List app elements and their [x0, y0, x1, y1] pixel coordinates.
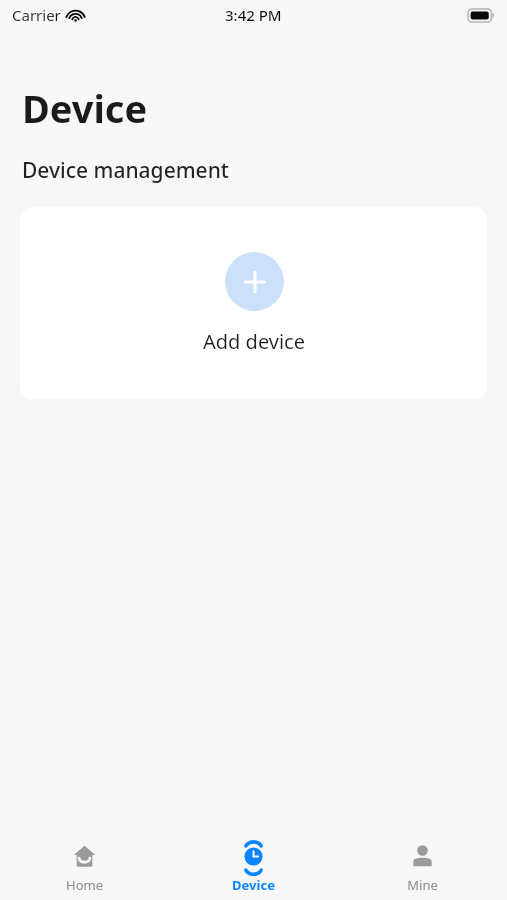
button[interactable]: Device — [169, 830, 338, 900]
staticText: Home — [66, 876, 103, 894]
button[interactable]: Home — [0, 830, 169, 900]
staticText: Mine — [407, 876, 438, 894]
staticText: Device — [232, 876, 275, 894]
staticText: Carrier — [12, 5, 61, 25]
staticText: Device management — [22, 156, 229, 185]
staticText: Device — [22, 82, 148, 134]
button[interactable]: Mine — [338, 830, 507, 900]
button[interactable]: Add device — [20, 207, 487, 399]
staticText: 3:42 PM — [225, 5, 282, 25]
staticText: Add device — [203, 328, 305, 355]
